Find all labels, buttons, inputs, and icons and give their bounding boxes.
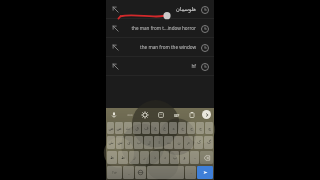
staticText: ط [121, 155, 125, 160]
button[interactable]: Insert suggestion [110, 42, 121, 53]
button[interactable]: Send [197, 166, 213, 179]
button[interactable]: ج [196, 122, 204, 134]
staticText: ج [199, 126, 202, 131]
staticText: ض [108, 126, 114, 131]
button[interactable]: غ [151, 122, 159, 134]
button[interactable]: ظ [107, 151, 117, 164]
button[interactable]: ، [190, 151, 199, 164]
button[interactable]: More options [125, 110, 135, 120]
button[interactable]: ط [118, 151, 128, 164]
staticText: ک [197, 140, 201, 145]
button[interactable]: ی [125, 136, 133, 149]
button[interactable]: Recent search [199, 42, 210, 53]
button[interactable]: , [123, 166, 134, 179]
button[interactable]: پ [170, 151, 179, 164]
button[interactable]: Voice input [109, 110, 119, 120]
staticText: ل [147, 140, 151, 145]
staticText: چ [208, 126, 211, 131]
staticText: ع [163, 126, 166, 131]
staticText: . [190, 170, 192, 176]
button[interactable]: ب [134, 136, 143, 149]
button[interactable]: Stickers [156, 110, 166, 120]
staticText: ه [172, 126, 175, 131]
button[interactable]: Insert suggestion [110, 4, 121, 15]
button[interactable]: Insert suggestion [106, 57, 214, 75]
button[interactable]: Recent search [199, 4, 210, 15]
button[interactable]: ?۱۲ [107, 166, 122, 179]
button[interactable]: ق [133, 122, 141, 134]
staticText: و [183, 155, 186, 160]
button[interactable]: ن [174, 136, 183, 149]
button[interactable]: چ [205, 122, 213, 134]
staticText: گ [207, 140, 211, 145]
staticText: ش [108, 140, 114, 145]
staticText: س [117, 140, 123, 145]
staticText: ف [144, 126, 149, 131]
button[interactable]: GIF [171, 110, 181, 120]
staticText: ز [133, 155, 136, 160]
staticText: ظ [110, 155, 114, 160]
button[interactable]: ف [142, 122, 150, 134]
button[interactable]: Insert suggestion [106, 19, 214, 37]
staticText: ر [143, 155, 146, 160]
button[interactable]: ش [107, 136, 115, 149]
staticText: ی [127, 140, 131, 145]
button[interactable]: Insert suggestion [110, 61, 121, 72]
button[interactable]: Expand toolbar [202, 110, 211, 119]
staticText: خ [181, 126, 184, 131]
staticText: ، [194, 155, 196, 160]
button[interactable]: Backspace [200, 151, 213, 164]
button[interactable]: گ [204, 136, 213, 149]
button[interactable]: Settings [140, 110, 150, 120]
button[interactable]: Insert suggestion [106, 0, 214, 18]
staticText: ت [167, 140, 171, 145]
staticText: the man from the window [140, 44, 196, 50]
button[interactable]: ص [115, 122, 123, 134]
button[interactable]: س [116, 136, 124, 149]
button[interactable]: ز [129, 151, 139, 164]
staticText: ص [116, 126, 122, 131]
staticText: the man from t...indow horror [131, 25, 196, 31]
staticText: ح [190, 126, 193, 131]
button[interactable]: ت [164, 136, 173, 149]
button[interactable]: Recent search [199, 23, 210, 34]
button[interactable]: ا [154, 136, 163, 149]
button[interactable]: ث [124, 122, 132, 134]
button[interactable]: ض [107, 122, 114, 134]
staticText: د [164, 155, 166, 160]
staticText: ب [137, 140, 141, 145]
staticText: ث [126, 126, 130, 131]
button[interactable]: خ [178, 122, 186, 134]
button[interactable]: و [180, 151, 189, 164]
staticText: ق [135, 126, 139, 131]
button[interactable]: Space [147, 166, 184, 179]
button[interactable]: ر [140, 151, 149, 164]
staticText: ن [177, 140, 181, 145]
button[interactable]: م [184, 136, 193, 149]
staticText: غ [154, 126, 157, 131]
button[interactable]: Insert suggestion [106, 38, 214, 56]
button[interactable]: Switch language [135, 166, 146, 179]
button[interactable]: ح [187, 122, 195, 134]
staticText: پ [173, 155, 177, 160]
staticText: ا [158, 140, 160, 145]
staticText: م [187, 140, 190, 145]
button[interactable]: ل [144, 136, 153, 149]
staticText: hf [191, 63, 196, 70]
staticText: GIF [174, 114, 180, 118]
staticText: , [128, 170, 130, 176]
button[interactable]: Insert suggestion [110, 23, 121, 34]
button[interactable]: د [160, 151, 169, 164]
staticText: هلوسیبان [175, 6, 196, 12]
button[interactable]: . [185, 166, 196, 179]
staticText: ?۱۲ [112, 171, 117, 175]
staticText: ذ [154, 155, 156, 160]
button[interactable]: Recent search [199, 61, 210, 72]
button[interactable]: ع [160, 122, 168, 134]
button[interactable]: ذ [150, 151, 159, 164]
button[interactable]: ک [194, 136, 203, 149]
button[interactable]: Clipboard [187, 110, 197, 120]
button[interactable]: ه [169, 122, 177, 134]
